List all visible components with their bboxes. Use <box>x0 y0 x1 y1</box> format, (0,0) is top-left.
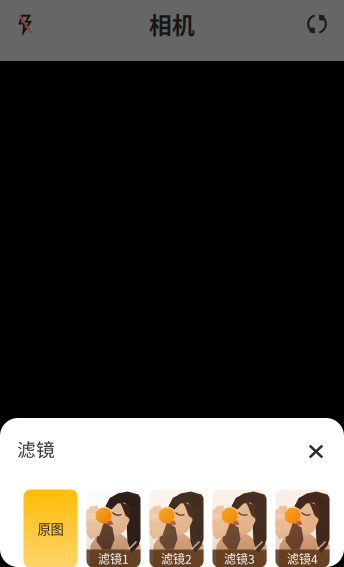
staticText: 滤镜3 <box>224 550 255 567</box>
button[interactable]: 原图 <box>23 489 77 567</box>
staticText: 滤镜 <box>17 435 55 462</box>
staticText: 滤镜4 <box>287 550 318 567</box>
button[interactable]: Flash off <box>5 2 45 46</box>
staticText: 原图 <box>37 519 63 538</box>
staticText: 滤镜1 <box>98 550 129 567</box>
button[interactable]: Close <box>301 430 331 466</box>
staticText: 滤镜2 <box>161 550 192 567</box>
button[interactable]: 滤镜4 <box>275 489 329 567</box>
button[interactable]: 滤镜2 <box>149 489 203 567</box>
button[interactable]: Switch camera <box>297 2 337 46</box>
staticText: 相机 <box>149 7 195 40</box>
button[interactable]: 滤镜3 <box>212 489 266 567</box>
button[interactable]: 滤镜1 <box>86 489 140 567</box>
